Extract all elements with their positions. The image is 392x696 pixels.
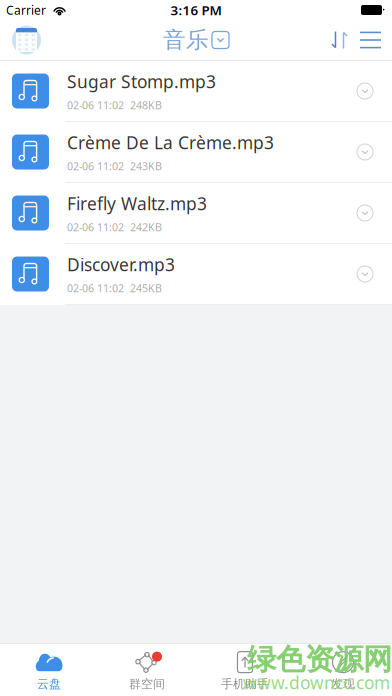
button[interactable]: 手机助手 [196,642,294,696]
staticText: 02-06 11:02 248KB [67,98,162,112]
button[interactable]: Sort [331,30,360,49]
button[interactable]: Firefly Waltz.mp3 [0,183,392,244]
button[interactable]: Crème De La Crème.mp3 [0,122,392,183]
button[interactable]: App [0,25,41,54]
staticText: 音乐 [163,26,209,54]
button[interactable]: Menu [360,31,392,48]
button[interactable]: Discover.mp3 [0,244,392,305]
staticText: 02-06 11:02 243KB [67,159,162,173]
staticText: 发现 [331,677,355,691]
staticText: 手机助手 [221,677,269,691]
button[interactable]: Sugar Stomp.mp3 [0,61,392,122]
button[interactable]: 群空间 [98,642,196,696]
staticText: 02-06 11:02 245KB [67,281,162,295]
staticText: Sugar Stomp.mp3 [67,70,216,93]
staticText: 3:16 PM [170,1,221,19]
button[interactable]: 音乐 [163,26,229,54]
staticText: Discover.mp3 [67,253,175,276]
staticText: www.downcc.com [243,671,390,694]
staticText: 云盘 [37,677,61,691]
staticText: Carrier [6,2,46,18]
staticText: 绿色资源网 [247,641,392,677]
staticText: 02-06 11:02 242KB [67,220,162,234]
button[interactable]: 云盘 [0,642,98,696]
staticText: Crème De La Crème.mp3 [67,131,274,154]
button[interactable]: 发现 [294,642,392,696]
staticText: Firefly Waltz.mp3 [67,192,207,215]
staticText: 群空间 [129,677,165,691]
